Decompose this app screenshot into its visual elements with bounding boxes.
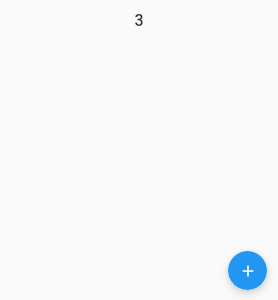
staticText: 3 bbox=[0, 11, 278, 30]
button[interactable]: Add bbox=[228, 251, 267, 290]
